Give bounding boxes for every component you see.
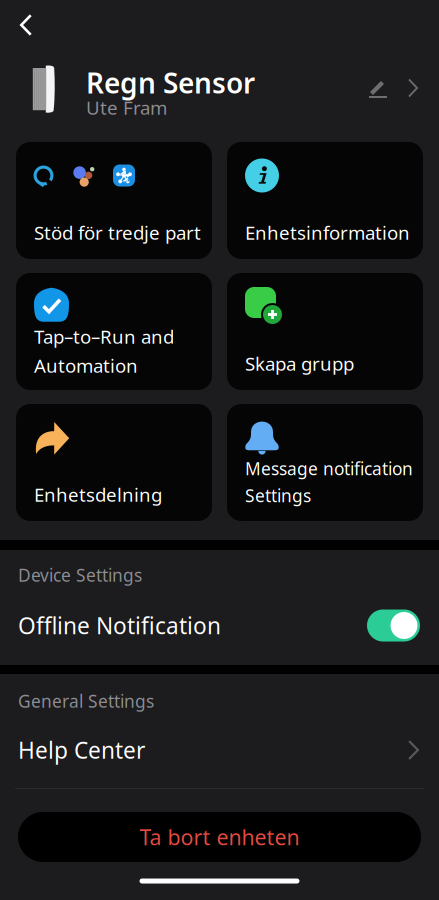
staticText: Ta bort enheten <box>139 823 299 851</box>
staticText: Enhetsinformation <box>245 220 410 245</box>
staticText: Message notification Settings <box>245 457 413 507</box>
button[interactable]: Enhetsdelning <box>16 404 212 521</box>
button[interactable]: Help Center <box>0 710 439 776</box>
staticText: Help Center <box>18 735 145 765</box>
button[interactable]: Back <box>0 4 50 46</box>
button[interactable]: Skapa grupp <box>227 273 423 390</box>
button[interactable]: Regn Sensor <box>0 50 439 126</box>
button[interactable]: Tap–to–Run and Automation <box>16 273 212 390</box>
staticText: Tap–to–Run and Automation <box>34 324 174 378</box>
button[interactable]: Ta bort enheten <box>18 812 421 862</box>
button[interactable]: Stöd för tredje part <box>16 142 212 259</box>
staticText: Enhetsdelning <box>34 482 162 507</box>
staticText: Device Settings <box>18 563 142 586</box>
button[interactable]: Enhetsinformation <box>227 142 423 259</box>
staticText: Skapa grupp <box>245 351 354 376</box>
staticText: Regn Sensor <box>86 64 255 101</box>
staticText: General Settings <box>18 689 154 712</box>
staticText: Offline Notification <box>18 610 221 640</box>
button[interactable]: Offline Notification <box>0 584 439 653</box>
button[interactable]: Message notification Settings <box>227 404 423 521</box>
staticText: Stöd för tredje part <box>34 220 201 245</box>
staticText: Ute Fram <box>86 95 167 120</box>
